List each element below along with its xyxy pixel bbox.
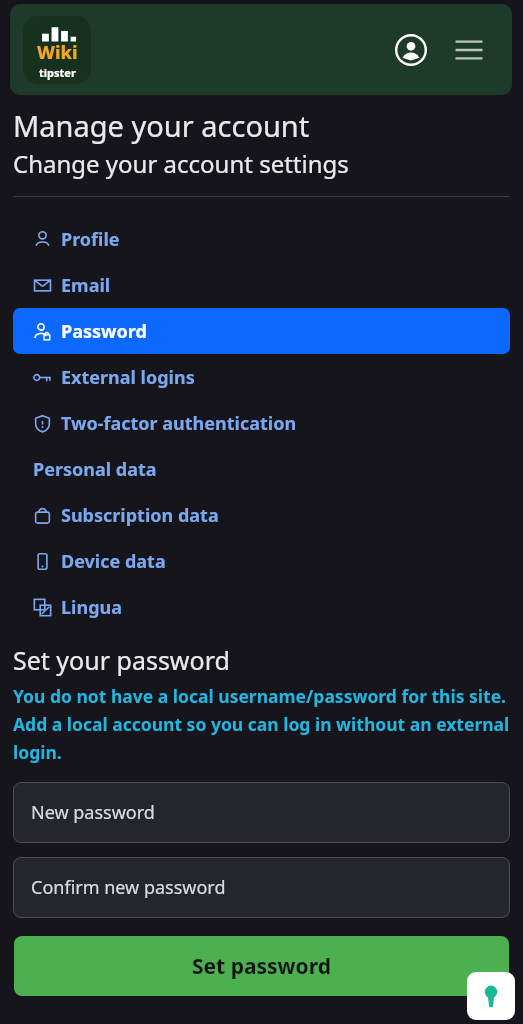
staticText: Lingua <box>61 595 123 620</box>
staticText: External logins <box>61 365 195 390</box>
button[interactable]: Personal data <box>13 446 510 492</box>
staticText: Change your account settings <box>13 147 349 180</box>
button[interactable]: Profile <box>13 216 510 262</box>
staticText: Device data <box>61 549 166 574</box>
button[interactable]: Email <box>13 262 510 308</box>
button[interactable]: Password <box>13 308 510 354</box>
staticText: Personal data <box>33 457 157 482</box>
button[interactable]: Account <box>390 29 432 71</box>
staticText: Subscription data <box>61 503 219 528</box>
staticText: Wiki <box>37 40 78 65</box>
button[interactable]: Two-factor authentication <box>13 400 510 446</box>
staticText: Password <box>61 319 147 344</box>
button[interactable]: Confirm new password <box>13 857 510 918</box>
staticText: Profile <box>61 227 120 252</box>
button[interactable]: Set password <box>14 936 509 996</box>
button[interactable]: Subscription data <box>13 492 510 538</box>
staticText: Manage your account <box>13 106 310 145</box>
button[interactable]: Lingua <box>13 584 510 630</box>
button[interactable]: Menu <box>448 29 490 71</box>
button[interactable]: New password <box>13 782 510 843</box>
staticText: Confirm new password <box>31 875 226 900</box>
staticText: tipster <box>39 65 76 80</box>
staticText: Set your password <box>13 643 230 677</box>
button[interactable]: Password manager <box>467 972 515 1020</box>
staticText: Email <box>61 273 111 298</box>
staticText: New password <box>31 800 155 825</box>
staticText: Two-factor authentication <box>61 411 297 436</box>
staticText: Set password <box>192 952 331 981</box>
staticText: You do not have a local username/passwor… <box>13 684 511 764</box>
button[interactable]: Device data <box>13 538 510 584</box>
button[interactable]: Wikitipster home <box>23 16 91 84</box>
button[interactable]: External logins <box>13 354 510 400</box>
